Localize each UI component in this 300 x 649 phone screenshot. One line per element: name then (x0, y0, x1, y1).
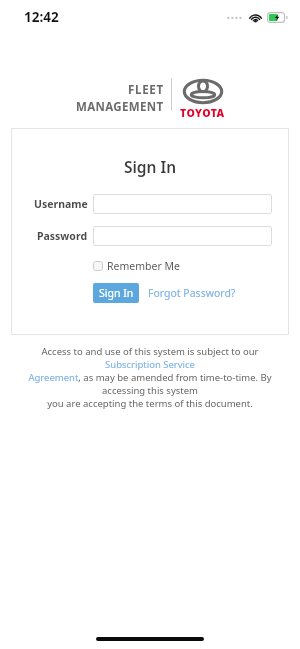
button[interactable]: Remember Me (93, 257, 180, 275)
staticText: TOYOTA (180, 106, 225, 120)
staticText: Forgot Password? (148, 286, 236, 300)
staticText: Password (37, 229, 88, 243)
staticText: 12:42 (24, 8, 59, 26)
staticText: Remember Me (107, 259, 180, 273)
staticText: Username (34, 197, 88, 211)
staticText: Access to and use of this system is subj… (18, 345, 282, 371)
button[interactable]: Sign In (93, 283, 139, 303)
button[interactable]: Forgot Password? (148, 283, 236, 303)
staticText: Sign In (99, 286, 134, 300)
button[interactable] (93, 194, 272, 214)
staticText: FLEET (128, 82, 164, 98)
staticText: Sign In (11, 156, 289, 177)
staticText: MANAGEMENT (76, 99, 164, 115)
staticText: you are accepting the terms of this docu… (18, 397, 282, 410)
button[interactable] (93, 226, 272, 246)
button[interactable]: Agreement, as may be amended from time-t… (18, 371, 282, 397)
